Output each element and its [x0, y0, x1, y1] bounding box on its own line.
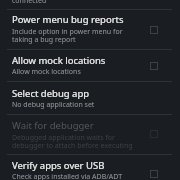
staticText: Power menu bug reports [12, 13, 124, 26]
button[interactable] [0, 81, 180, 114]
staticText: Verify apps over USB [12, 159, 105, 172]
staticText: Wait for debugger [12, 119, 94, 132]
staticText: Select debug app [12, 87, 90, 100]
staticText: Check apps installed via ADB/ADT [12, 172, 123, 180]
button[interactable]: Toggle Verify apps over USB [143, 163, 165, 180]
button[interactable]: Toggle Power menu bug reports [143, 19, 165, 41]
staticText: No debug application set [12, 100, 95, 110]
staticText: connected [12, 0, 47, 6]
staticText: Debugged application waits for debugger … [12, 133, 133, 150]
button[interactable] [0, 49, 180, 81]
button[interactable]: Toggle Wait for debugger [143, 123, 165, 145]
staticText: Include option in power menu for taking … [12, 27, 123, 44]
button[interactable] [0, 114, 180, 154]
button[interactable] [0, 154, 180, 180]
button[interactable]: Toggle Allow mock locations [143, 55, 165, 77]
staticText: Allow mock locations [12, 67, 81, 77]
button[interactable] [0, 9, 180, 49]
staticText: Allow mock locations [12, 54, 106, 67]
